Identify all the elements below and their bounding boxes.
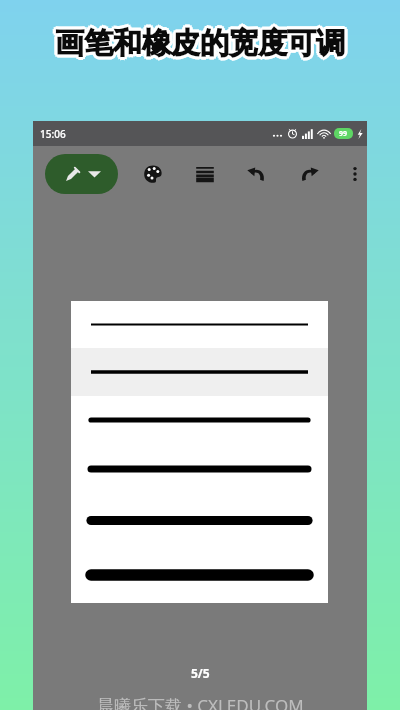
button[interactable]: Stroke width option — [71, 396, 328, 444]
staticText: 画笔和橡皮的宽度可调 — [53, 23, 343, 60]
button[interactable]: Undo — [242, 159, 272, 189]
button[interactable]: More options — [342, 159, 367, 189]
staticText: 画笔和橡皮的宽度可调 — [53, 27, 343, 64]
staticText: 画笔和橡皮的宽度可调 — [57, 23, 347, 60]
staticText: 晨曦乐下载 • CXLEDU.COM — [97, 694, 304, 710]
staticText: 5/5 — [191, 665, 210, 681]
button[interactable]: Stroke width option — [71, 547, 328, 603]
staticText: 画笔和橡皮的宽度可调 — [55, 25, 345, 62]
button[interactable]: Stroke width option — [71, 348, 328, 396]
button[interactable]: Redo — [294, 159, 324, 189]
button[interactable]: Color palette — [138, 159, 168, 189]
staticText: 99 — [339, 129, 348, 139]
staticText: 画笔和橡皮的宽度可调 — [55, 28, 345, 65]
staticText: 画笔和橡皮的宽度可调 — [55, 22, 345, 59]
button[interactable]: Stroke width option — [71, 301, 328, 348]
staticText: 15:06 — [40, 127, 66, 141]
staticText: 画笔和橡皮的宽度可调 — [57, 27, 347, 64]
staticText: 画笔和橡皮的宽度可调 — [53, 25, 343, 62]
staticText: 画笔和橡皮的宽度可调 — [57, 25, 347, 62]
staticText: 画笔和橡皮的宽度可调 — [58, 25, 348, 62]
button[interactable]: Stroke width — [190, 159, 220, 189]
button[interactable]: Brush tool — [45, 154, 118, 194]
button[interactable]: Stroke width option — [71, 444, 328, 494]
staticText: 画笔和橡皮的宽度可调 — [55, 27, 345, 64]
button[interactable]: Stroke width option — [71, 494, 328, 547]
staticText: 画笔和橡皮的宽度可调 — [55, 23, 345, 60]
staticText: 画笔和橡皮的宽度可调 — [52, 25, 342, 62]
